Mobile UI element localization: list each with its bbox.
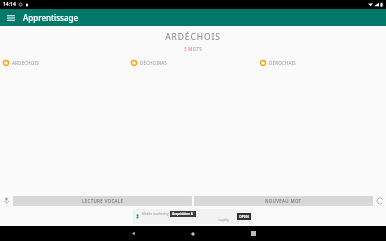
button[interactable]: LECTURE VOCALE bbox=[13, 196, 192, 206]
staticText: DÉROCHAIS bbox=[269, 60, 296, 66]
staticText: Apprentissage bbox=[23, 12, 79, 23]
staticText: Mobile marketing bbox=[142, 212, 169, 216]
staticText: OPEN bbox=[239, 214, 249, 219]
button[interactable]: Refresh bbox=[373, 194, 386, 207]
staticText: ARDÉCHOIS bbox=[12, 60, 39, 66]
button[interactable]: Back bbox=[118, 226, 148, 241]
button[interactable]: DÉROCHAIS bbox=[257, 59, 386, 67]
button[interactable]: OPEN bbox=[237, 213, 251, 220]
staticText: Loyalty bbox=[142, 218, 229, 222]
button[interactable]: Home bbox=[178, 226, 208, 241]
staticText: Acquisition & bbox=[172, 212, 194, 216]
button[interactable]: NOUVEAU MOT bbox=[194, 196, 373, 206]
button[interactable]: Recent apps bbox=[238, 226, 268, 241]
staticText: DÉCHOIRAS bbox=[140, 60, 167, 66]
staticText: 3 MOTS bbox=[0, 46, 386, 52]
button[interactable]: Mobile marketing bbox=[133, 209, 253, 224]
staticText: ARDÉCHOIS bbox=[0, 31, 386, 43]
button[interactable]: DÉCHOIRAS bbox=[128, 59, 257, 67]
button[interactable]: Microphone bbox=[0, 194, 13, 207]
staticText: NOUVEAU MOT bbox=[265, 198, 302, 204]
button[interactable]: Menu bbox=[5, 12, 17, 24]
staticText: 14:14 bbox=[3, 1, 16, 8]
button[interactable]: ARDÉCHOIS bbox=[0, 59, 128, 67]
staticText: LECTURE VOCALE bbox=[82, 198, 124, 204]
